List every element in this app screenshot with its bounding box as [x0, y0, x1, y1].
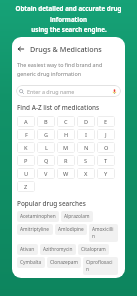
staticText: H — [64, 131, 69, 139]
button[interactable]: Cymbalta — [17, 257, 45, 268]
button[interactable]: Voice search — [110, 87, 119, 96]
staticText: C — [64, 118, 68, 126]
button[interactable]: O — [97, 142, 115, 153]
staticText: G — [44, 131, 49, 139]
staticText: Citalopram — [81, 246, 106, 253]
staticText: U — [24, 170, 29, 178]
staticText: E — [104, 118, 108, 126]
staticText: Ciprofloxacin — [86, 259, 115, 273]
staticText: W — [63, 170, 69, 178]
button[interactable]: Citalopram — [78, 244, 109, 255]
staticText: Clonazepam — [50, 259, 78, 266]
staticText: Popular drug searches — [17, 199, 86, 208]
staticText: B — [44, 118, 48, 126]
button[interactable]: X — [77, 168, 95, 179]
button[interactable]: J — [97, 129, 115, 140]
staticText: Ativan — [20, 246, 35, 253]
button[interactable]: V — [37, 168, 55, 179]
button[interactable]: R — [57, 155, 75, 166]
button[interactable]: Enter a drug name — [16, 85, 121, 97]
staticText: Alprazolam — [64, 213, 90, 220]
button[interactable]: Amoxicillin — [89, 224, 118, 242]
button[interactable]: Ciprofloxacin — [83, 257, 118, 275]
button[interactable]: P — [17, 155, 35, 166]
button[interactable]: L — [37, 142, 55, 153]
staticText: F — [25, 131, 28, 139]
staticText: Z — [24, 183, 28, 191]
button[interactable]: Q — [37, 155, 55, 166]
button[interactable]: A — [17, 116, 35, 127]
button[interactable]: N — [77, 142, 95, 153]
staticText: L — [45, 144, 48, 152]
button[interactable]: W — [57, 168, 75, 179]
staticText: Amitriptyline — [20, 226, 50, 233]
staticText: R — [64, 157, 68, 165]
button[interactable]: Amitriptyline — [17, 224, 53, 235]
button[interactable]: H — [57, 129, 75, 140]
staticText: Q — [44, 157, 49, 165]
button[interactable]: K — [17, 142, 35, 153]
staticText: Enter a drug name — [27, 88, 75, 95]
button[interactable]: Y — [97, 168, 115, 179]
button[interactable]: E — [97, 116, 115, 127]
staticText: P — [24, 157, 28, 165]
staticText: Obtain detailed and accurate drug inform… — [7, 4, 130, 23]
staticText: I — [85, 131, 87, 139]
staticText: Y — [104, 170, 108, 178]
button[interactable]: F — [17, 129, 35, 140]
button[interactable]: C — [57, 116, 75, 127]
staticText: J — [105, 131, 107, 139]
button[interactable]: B — [37, 116, 55, 127]
staticText: Azithromycin — [43, 246, 73, 253]
button[interactable]: I — [77, 129, 95, 140]
button[interactable]: Azithromycin — [40, 244, 76, 255]
staticText: Cymbalta — [20, 259, 42, 266]
button[interactable]: Back — [15, 43, 27, 55]
button[interactable]: D — [77, 116, 95, 127]
staticText: Acetaminophen — [20, 213, 56, 220]
staticText: O — [104, 144, 109, 152]
button[interactable]: U — [17, 168, 35, 179]
staticText: Drugs & Medications — [30, 44, 102, 54]
staticText: D — [84, 118, 89, 126]
button[interactable]: Acetaminophen — [17, 211, 59, 222]
button[interactable]: M — [57, 142, 75, 153]
staticText: Amoxicillin — [92, 226, 115, 240]
staticText: Amlodipine — [58, 226, 84, 233]
button[interactable]: Clonazepam — [47, 257, 81, 268]
staticText: K — [24, 144, 28, 152]
button[interactable]: G — [37, 129, 55, 140]
staticText: X — [84, 170, 88, 178]
staticText: N — [84, 144, 89, 152]
staticText: T — [104, 157, 108, 165]
staticText: The easiest way to find brand and generi… — [17, 61, 120, 78]
staticText: M — [63, 144, 69, 152]
staticText: A — [24, 118, 28, 126]
button[interactable]: Amlodipine — [55, 224, 87, 235]
button[interactable]: Alprazolam — [61, 211, 93, 222]
button[interactable]: Ativan — [17, 244, 38, 255]
staticText: S — [84, 157, 88, 165]
staticText: using the search engine. — [31, 25, 107, 33]
button[interactable]: Z — [17, 181, 35, 192]
staticText: Find A-Z list of medications — [17, 103, 100, 112]
staticText: V — [44, 170, 48, 178]
button[interactable]: S — [77, 155, 95, 166]
button[interactable]: T — [97, 155, 115, 166]
